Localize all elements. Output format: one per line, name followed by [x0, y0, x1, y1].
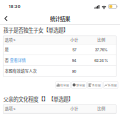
button[interactable]: 饼状图 — [72, 82, 86, 88]
staticText: 比例 — [97, 106, 105, 112]
staticText: 父亲的文化程度【】【单选题】 — [3, 95, 73, 103]
staticText: 孩子是否独生子女【单选题】 — [3, 26, 68, 34]
staticText: 62.24% — [94, 58, 108, 63]
staticText: 57 — [72, 47, 76, 52]
staticText: 比例 — [97, 37, 105, 43]
staticText: 否 — [5, 58, 9, 63]
staticText: 小计 — [70, 106, 78, 112]
staticText: 是 — [5, 47, 9, 53]
button[interactable]: Back — [0, 13, 12, 24]
staticText: 条形图 — [92, 83, 101, 87]
staticText: 94 — [72, 58, 77, 63]
staticText: 18:30 — [9, 4, 21, 9]
staticText: 折线图 — [108, 83, 117, 87]
button[interactable]: 柱状图 — [56, 82, 70, 88]
staticText: 柱状图 — [60, 83, 69, 87]
staticText: ⇅ — [13, 107, 15, 111]
staticText: 选项 — [5, 106, 13, 112]
staticText: 90 — [72, 69, 77, 74]
button[interactable]: 条形图 — [87, 82, 102, 88]
staticText: ⇅ — [13, 39, 15, 42]
button[interactable]: 折线图 — [103, 82, 118, 88]
staticText: 饼状图 — [76, 83, 85, 87]
staticText: 本题有效填写人次 — [5, 68, 37, 74]
staticText: 小计 — [70, 37, 78, 43]
staticText: 37.76% — [95, 47, 108, 52]
staticText: 查看详情 — [10, 58, 26, 63]
staticText: 统计结果 — [50, 15, 70, 22]
staticText: 选项 — [5, 37, 13, 43]
